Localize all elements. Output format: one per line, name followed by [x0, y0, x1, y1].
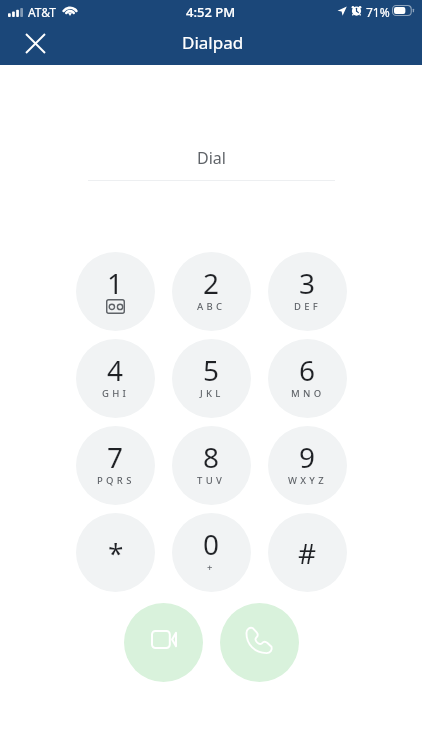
- staticText: *: [108, 534, 124, 572]
- button[interactable]: 1: [76, 252, 155, 331]
- button[interactable]: 6: [268, 339, 347, 418]
- button[interactable]: Close: [20, 28, 50, 58]
- staticText: 5: [203, 351, 220, 389]
- staticText: TUV: [197, 474, 226, 487]
- staticText: 4: [107, 351, 124, 389]
- staticText: 4:52 PM: [186, 3, 236, 21]
- staticText: 71%: [366, 4, 390, 20]
- button[interactable]: #: [268, 513, 347, 592]
- staticText: JKL: [200, 387, 224, 400]
- button[interactable]: 0: [172, 513, 251, 592]
- staticText: AT&T: [28, 4, 56, 20]
- button[interactable]: 4: [76, 339, 155, 418]
- staticText: DEF: [294, 300, 322, 313]
- staticText: 6: [299, 351, 316, 389]
- button[interactable]: Call: [220, 603, 299, 682]
- staticText: GHI: [102, 387, 130, 400]
- button[interactable]: Video call: [124, 603, 203, 682]
- staticText: 9: [299, 438, 316, 476]
- staticText: 0: [203, 525, 220, 563]
- staticText: 8: [203, 438, 220, 476]
- staticText: 1: [107, 264, 124, 302]
- staticText: Dialpad: [182, 31, 244, 54]
- staticText: +: [207, 561, 216, 574]
- staticText: 2: [203, 264, 220, 302]
- button[interactable]: 9: [268, 426, 347, 505]
- staticText: MNO: [291, 387, 325, 400]
- staticText: WXYZ: [288, 474, 327, 487]
- button[interactable]: 8: [172, 426, 251, 505]
- staticText: PQRS: [97, 474, 135, 487]
- staticText: ABC: [197, 300, 226, 313]
- button[interactable]: 5: [172, 339, 251, 418]
- button[interactable]: *: [76, 513, 155, 592]
- staticText: 3: [299, 264, 316, 302]
- button[interactable]: 3: [268, 252, 347, 331]
- button[interactable]: 7: [76, 426, 155, 505]
- staticText: 7: [107, 438, 124, 476]
- staticText: #: [298, 534, 317, 572]
- staticText: Dial: [197, 147, 226, 169]
- button[interactable]: 2: [172, 252, 251, 331]
